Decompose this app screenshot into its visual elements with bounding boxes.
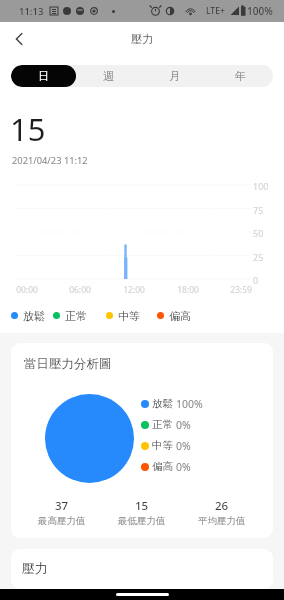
staticText: 50 [253, 227, 264, 239]
staticText: 壓力 [22, 560, 48, 576]
staticText: 最低壓力值 [118, 515, 166, 527]
staticText: 12:00 [119, 284, 149, 296]
staticText: 週 [103, 69, 114, 83]
staticText: 100% [176, 397, 203, 411]
staticText: 100 [253, 180, 269, 192]
button[interactable]: 年 [207, 65, 273, 87]
staticText: 壓力 [131, 32, 153, 46]
staticText: 06:00 [65, 284, 95, 296]
staticText: 25 [253, 251, 264, 263]
staticText: 23:59 [226, 284, 256, 296]
button[interactable]: 壓力 [11, 549, 273, 589]
staticText: 中等 [118, 309, 140, 323]
staticText: 放鬆 [23, 309, 45, 323]
button[interactable]: 中等 [106, 307, 140, 324]
button[interactable]: 偏高 [157, 307, 191, 324]
button[interactable]: 月 [141, 65, 207, 87]
staticText: 中等 [152, 439, 173, 452]
staticText: 15 [135, 498, 149, 514]
staticText: 正常 [152, 418, 173, 431]
staticText: 當日壓力分析圖 [24, 356, 112, 372]
staticText: 26 [215, 498, 229, 514]
staticText: 0 [253, 274, 259, 286]
staticText: 75 [253, 204, 264, 216]
staticText: 15 [10, 108, 46, 150]
staticText: 平均壓力值 [198, 515, 246, 527]
staticText: 18:00 [173, 284, 203, 296]
staticText: 0% [176, 439, 191, 453]
staticText: LTE+ [206, 5, 225, 17]
button[interactable]: 日 [11, 65, 76, 87]
button[interactable]: 放鬆 [11, 307, 45, 324]
button[interactable]: 正常 [53, 307, 87, 324]
staticText: 100% [247, 4, 273, 18]
staticText: 最高壓力值 [38, 515, 86, 527]
button[interactable]: 週 [76, 65, 141, 87]
staticText: 11:13 [19, 5, 44, 18]
staticText: 放鬆 [152, 397, 173, 410]
staticText: 年 [235, 69, 246, 83]
staticText: 0% [176, 460, 191, 474]
staticText: 偏高 [152, 460, 173, 473]
staticText: 0% [176, 418, 191, 432]
staticText: 月 [169, 69, 180, 83]
staticText: 日 [38, 69, 49, 83]
staticText: 偏高 [169, 309, 191, 323]
staticText: 正常 [65, 309, 87, 323]
staticText: 37 [55, 498, 69, 514]
button[interactable]: Back [5, 25, 33, 53]
staticText: 2021/04/23 11:12 [12, 154, 88, 167]
staticText: 00:00 [12, 284, 42, 296]
